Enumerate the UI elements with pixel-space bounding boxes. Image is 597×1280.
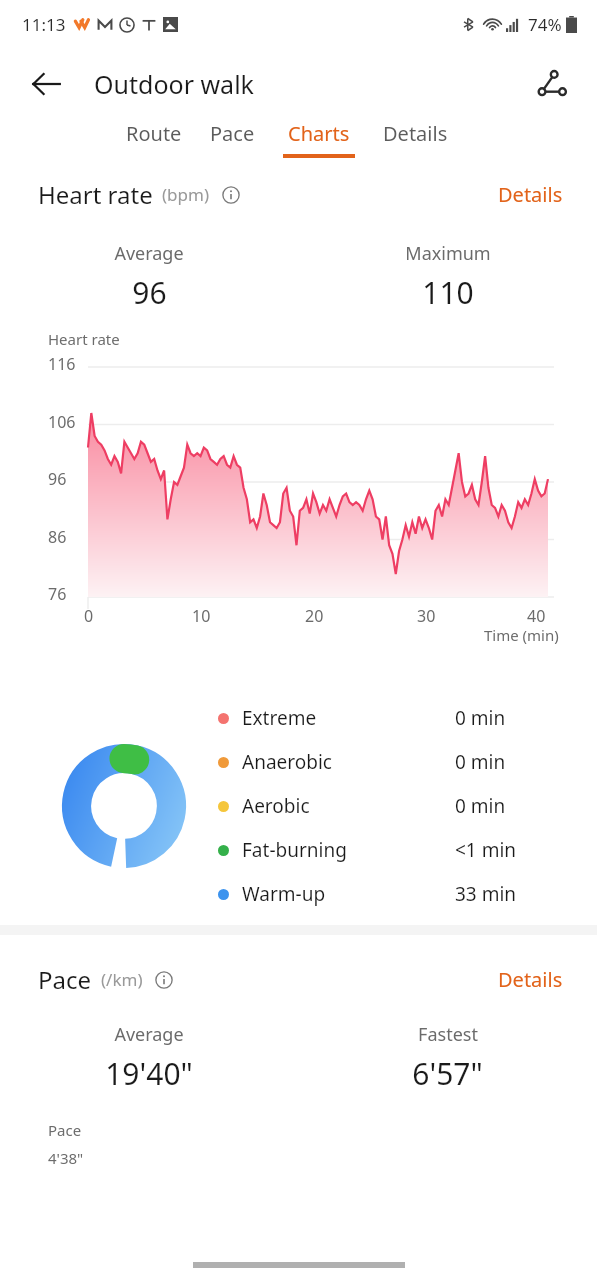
staticText: 19'40" [105, 1053, 193, 1094]
button[interactable]: Info [151, 967, 177, 993]
staticText: Warm-up [242, 881, 326, 907]
staticText: Fastest [418, 1022, 478, 1047]
staticText: Anaerobic [242, 749, 332, 775]
staticText: 30 [417, 605, 436, 627]
staticText: 96 [48, 468, 67, 490]
staticText: Average [114, 241, 184, 266]
staticText: 0 min [455, 749, 506, 775]
staticText: Maximum [405, 241, 491, 266]
button[interactable]: Share [529, 62, 573, 106]
staticText: Pace [48, 1120, 82, 1140]
button[interactable]: Details [498, 181, 563, 208]
staticText: (bpm) [162, 183, 210, 206]
staticText: 110 [422, 272, 474, 313]
staticText: 86 [48, 526, 67, 548]
staticText: Average [114, 1022, 184, 1047]
staticText: Pace [210, 120, 255, 147]
staticText: Route [126, 120, 182, 147]
staticText: 116 [48, 353, 76, 375]
staticText: 40 [527, 605, 546, 627]
staticText: Charts [288, 120, 350, 147]
button[interactable]: Details [498, 966, 563, 993]
staticText: 33 min [455, 881, 517, 907]
button[interactable]: Info [218, 182, 244, 208]
staticText: 76 [48, 583, 67, 605]
button[interactable]: Back [26, 64, 66, 104]
staticText: Pace [38, 963, 92, 996]
staticText: Extreme [242, 705, 317, 731]
button[interactable]: Charts [269, 120, 369, 158]
button[interactable]: Details [369, 120, 462, 154]
button[interactable]: Route [112, 120, 196, 154]
staticText: 0 min [455, 705, 506, 731]
staticText: 96 [132, 272, 167, 313]
staticText: 4'38" [48, 1148, 84, 1168]
staticText: Fat-burning [242, 837, 347, 863]
staticText: 20 [305, 605, 324, 627]
staticText: 10 [192, 605, 211, 627]
staticText: 0 min [455, 793, 506, 819]
staticText: Details [498, 181, 563, 208]
staticText: Heart rate [48, 329, 120, 349]
staticText: Aerobic [242, 793, 310, 819]
staticText: (/km) [101, 968, 143, 991]
staticText: <1 min [455, 837, 517, 863]
staticText: Details [498, 966, 563, 993]
staticText: Heart rate [38, 178, 153, 211]
button[interactable]: Pace [196, 120, 269, 154]
staticText: Time (min) [484, 625, 559, 645]
staticText: 74% [528, 13, 562, 36]
staticText: Outdoor walk [94, 67, 254, 101]
staticText: 6'57" [412, 1053, 483, 1094]
staticText: 0 [84, 605, 94, 627]
staticText: 11:13 [22, 13, 66, 36]
staticText: Details [383, 120, 448, 147]
staticText: 106 [48, 411, 76, 433]
